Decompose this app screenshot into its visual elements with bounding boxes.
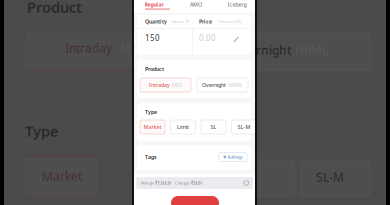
staticText: Market xyxy=(42,168,82,184)
staticText: Intraday xyxy=(65,40,112,56)
button[interactable]: Overnight xyxy=(197,78,248,92)
staticText: Market xyxy=(143,123,161,131)
staticText: MIS xyxy=(172,81,182,89)
button[interactable]: Iceberg xyxy=(215,1,259,7)
button[interactable]: AMO xyxy=(174,1,218,7)
staticText: 150 xyxy=(145,33,160,43)
button[interactable]: SL xyxy=(201,120,226,134)
staticText: AMO xyxy=(190,1,202,8)
staticText: SL xyxy=(210,123,216,131)
staticText: Quantity xyxy=(145,18,167,25)
staticText: Price xyxy=(199,18,212,25)
button[interactable]: Limit xyxy=(170,120,195,134)
staticText: rnight xyxy=(256,42,292,58)
staticText: NRML xyxy=(228,81,243,89)
button[interactable]: Market xyxy=(140,120,165,134)
button[interactable]: Regular xyxy=(132,1,176,7)
staticText: Tags xyxy=(145,153,157,161)
staticText: Charges xyxy=(175,180,190,186)
staticText: Overnight xyxy=(202,81,226,89)
staticText: Type xyxy=(25,121,59,141)
staticText: SL-M xyxy=(237,123,250,131)
staticText: M xyxy=(120,40,131,56)
staticText: NRML xyxy=(295,42,328,58)
staticText: Iceberg xyxy=(227,1,246,8)
staticText: Intraday xyxy=(149,81,170,89)
staticText: Product xyxy=(145,65,164,73)
staticText: Tick size 0.05 xyxy=(218,19,241,24)
staticText: ₹23.51 xyxy=(191,180,202,186)
staticText: Regular xyxy=(144,1,163,8)
button[interactable]: Intraday xyxy=(140,78,191,92)
staticText: SL-M xyxy=(316,169,344,185)
button[interactable]: Place order xyxy=(171,196,219,205)
staticText: Add tags xyxy=(228,154,243,160)
button[interactable]: SL-M xyxy=(231,120,256,134)
staticText: 0.00 xyxy=(199,33,216,43)
staticText: Limit xyxy=(177,123,189,131)
button[interactable]: Add tags xyxy=(219,152,247,161)
staticText: Type xyxy=(145,108,157,116)
staticText: Margin xyxy=(141,180,154,186)
staticText: Lot size 75 xyxy=(171,19,189,24)
staticText: ₹7,213.31 xyxy=(155,180,171,186)
staticText: Product xyxy=(27,0,82,17)
